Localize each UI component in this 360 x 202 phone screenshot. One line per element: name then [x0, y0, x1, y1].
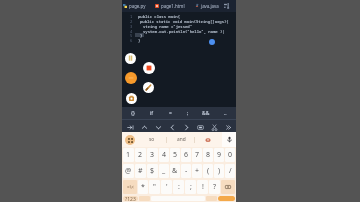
staticText: &&	[202, 110, 210, 117]
button[interactable]: _	[159, 164, 169, 178]
staticText: +	[195, 166, 200, 176]
staticText: _	[162, 166, 166, 176]
staticText: 5	[130, 33, 133, 38]
staticText: 4	[162, 150, 167, 160]
button[interactable]: =\<	[123, 180, 137, 194]
button[interactable]: *	[138, 180, 148, 194]
button[interactable]: &&	[199, 107, 213, 119]
staticText: string name ="jessed"	[143, 24, 193, 29]
button[interactable]: Stop	[143, 62, 155, 74]
staticText: ..	[224, 110, 227, 117]
button[interactable]: Pause	[125, 53, 136, 64]
staticText: 0	[228, 150, 233, 160]
button[interactable]: 1	[123, 148, 134, 162]
staticText: "	[153, 182, 156, 192]
button[interactable]: ?123	[123, 196, 138, 201]
staticText: 1	[130, 14, 133, 19]
staticText: ?123	[125, 196, 136, 201]
button[interactable]: 4	[159, 148, 169, 162]
staticText: )	[218, 166, 221, 176]
staticText: system.out.println("hello", name )|	[143, 29, 225, 34]
button[interactable]: /	[225, 164, 235, 178]
button[interactable]: Right	[180, 121, 192, 133]
button[interactable]: {}	[126, 107, 140, 119]
button[interactable]: if	[145, 107, 159, 119]
button[interactable]: +	[192, 164, 202, 178]
button[interactable]: and	[167, 132, 195, 147]
button[interactable]: page1.html	[155, 0, 185, 12]
button[interactable]: Camera	[126, 93, 137, 104]
staticText: 9	[217, 150, 222, 160]
button[interactable]: New file	[221, 0, 233, 12]
staticText: so	[149, 136, 155, 143]
button[interactable]: Up	[138, 121, 150, 133]
button[interactable]: Down	[152, 121, 164, 133]
staticText: {}	[131, 110, 135, 117]
button[interactable]: "	[149, 180, 160, 194]
button[interactable]: 5	[170, 148, 180, 162]
button[interactable]: Clipboard	[194, 132, 221, 147]
button[interactable]: =	[163, 107, 177, 119]
button[interactable]: Keyboard menu	[125, 135, 135, 145]
button[interactable]: (	[203, 164, 213, 178]
button[interactable]: Enter	[218, 196, 235, 201]
button[interactable]: :	[173, 180, 184, 194]
button[interactable]: ?	[209, 180, 220, 194]
button[interactable]: Cut	[208, 121, 220, 133]
staticText: =	[169, 110, 172, 117]
staticText: :	[178, 182, 180, 192]
button[interactable]: Edit	[143, 82, 154, 93]
button[interactable]: 8	[203, 148, 213, 162]
button[interactable]: Left	[166, 121, 178, 133]
button[interactable]: Run	[125, 72, 137, 84]
staticText: #	[138, 166, 143, 176]
button[interactable]: @	[123, 164, 134, 178]
button[interactable]: java.java	[195, 0, 219, 12]
staticText: $	[150, 166, 155, 176]
button[interactable]: Voice input	[222, 132, 236, 147]
button[interactable]: page.py	[123, 0, 146, 12]
staticText: =\<	[127, 184, 134, 190]
button[interactable]: $	[147, 164, 158, 178]
staticText: 6	[130, 38, 133, 43]
staticText: page1.html	[161, 3, 185, 9]
button[interactable]: '	[161, 180, 172, 194]
staticText: ;	[190, 182, 192, 192]
staticText: !	[202, 182, 204, 192]
button[interactable]: ;	[185, 180, 196, 194]
button[interactable]: so	[137, 132, 166, 147]
button[interactable]: More	[222, 121, 234, 133]
staticText: 3	[150, 150, 155, 160]
button[interactable]: 3	[147, 148, 158, 162]
button[interactable]: Select	[194, 121, 206, 133]
button[interactable]: !	[197, 180, 208, 194]
button[interactable]: 2	[135, 148, 146, 162]
staticText: public static void main(String[]args){	[140, 19, 229, 24]
staticText: }	[140, 33, 143, 38]
button[interactable]: ..	[218, 107, 232, 119]
button[interactable]: Tab	[124, 121, 136, 133]
button[interactable]: )	[214, 164, 224, 178]
button[interactable]: 0	[225, 148, 235, 162]
staticText: 2	[138, 150, 143, 160]
button[interactable]: Backspace	[221, 180, 235, 194]
button[interactable]: 6	[181, 148, 191, 162]
button[interactable]: &	[170, 164, 180, 178]
button[interactable]: 7	[192, 148, 202, 162]
staticText: ?	[213, 182, 217, 192]
button[interactable]: #	[135, 164, 146, 178]
button[interactable]: 9	[214, 148, 224, 162]
button[interactable]: -	[181, 164, 191, 178]
button[interactable]: ;	[181, 107, 195, 119]
staticText: &	[172, 166, 178, 176]
staticText: -	[185, 166, 188, 176]
staticText: /	[229, 166, 232, 176]
staticText: ;	[187, 110, 189, 117]
staticText: and	[177, 136, 186, 143]
staticText: java.java	[201, 3, 219, 9]
